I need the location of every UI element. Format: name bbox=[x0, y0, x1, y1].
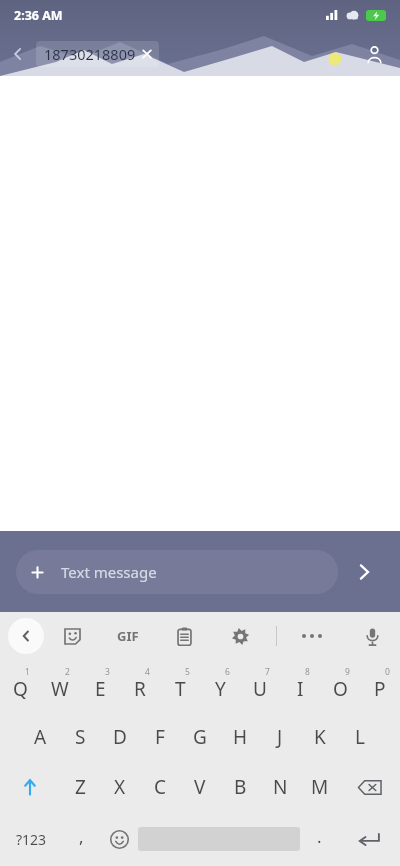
button[interactable]: Stickers bbox=[44, 612, 100, 660]
staticText: Y bbox=[215, 676, 226, 702]
button[interactable]: 0 bbox=[360, 660, 400, 712]
staticText: Text message bbox=[61, 562, 157, 582]
staticText: O bbox=[333, 676, 348, 702]
other: Attach bbox=[30, 565, 45, 580]
button[interactable]: Close toolbar bbox=[8, 618, 44, 654]
staticText: 18730218809 bbox=[44, 44, 136, 64]
staticText: 1 bbox=[25, 666, 30, 678]
button[interactable]: Enter bbox=[338, 812, 400, 866]
button[interactable]: J bbox=[260, 712, 300, 762]
button[interactable]: 8 bbox=[280, 660, 320, 712]
staticText: L bbox=[355, 724, 365, 750]
staticText: 7 bbox=[265, 666, 270, 678]
staticText: N bbox=[273, 774, 288, 800]
staticText: 9 bbox=[345, 666, 350, 678]
staticText: E bbox=[95, 676, 106, 702]
button[interactable]: Backspace bbox=[340, 762, 400, 812]
staticText: U bbox=[253, 676, 267, 702]
button[interactable]: . bbox=[300, 812, 338, 866]
button[interactable]: 2 bbox=[40, 660, 80, 712]
button[interactable]: Z bbox=[60, 762, 100, 812]
staticText: K bbox=[314, 724, 326, 750]
staticText: A bbox=[34, 724, 47, 750]
button[interactable]: Shift bbox=[0, 762, 60, 812]
button[interactable]: Attach bbox=[16, 550, 338, 594]
button[interactable]: 9 bbox=[320, 660, 360, 712]
button[interactable]: Contacts bbox=[354, 34, 394, 74]
button[interactable]: Settings bbox=[212, 612, 268, 660]
button[interactable]: B bbox=[220, 762, 260, 812]
staticText: I bbox=[297, 676, 304, 702]
button[interactable]: K bbox=[300, 712, 340, 762]
staticText: D bbox=[113, 724, 127, 750]
staticText: P bbox=[374, 676, 386, 702]
staticText: 3 bbox=[105, 666, 110, 678]
staticText: Q bbox=[13, 676, 28, 702]
button[interactable]: F bbox=[140, 712, 180, 762]
button[interactable]: Back bbox=[0, 36, 36, 72]
staticText: X bbox=[114, 774, 126, 800]
staticText: M bbox=[311, 774, 329, 800]
button[interactable]: Send bbox=[338, 546, 390, 598]
button[interactable]: Clipboard bbox=[156, 612, 212, 660]
staticText: 2 bbox=[65, 666, 70, 678]
staticText: B bbox=[234, 774, 247, 800]
button[interactable]: D bbox=[100, 712, 140, 762]
button[interactable]: N bbox=[260, 762, 300, 812]
staticText: G bbox=[193, 724, 207, 750]
button[interactable]: GIF bbox=[100, 612, 156, 660]
staticText: H bbox=[233, 724, 248, 750]
staticText: S bbox=[75, 724, 86, 750]
button[interactable]: M bbox=[300, 762, 340, 812]
staticText: ?123 bbox=[16, 830, 47, 849]
button[interactable]: , bbox=[62, 812, 100, 866]
staticText: 5 bbox=[185, 666, 190, 678]
button[interactable]: More options bbox=[284, 612, 340, 660]
staticText: , bbox=[79, 825, 84, 848]
staticText: R bbox=[134, 676, 146, 702]
staticText: C bbox=[154, 774, 167, 800]
button[interactable]: 1 bbox=[0, 660, 40, 712]
staticText: 8 bbox=[305, 666, 310, 678]
staticText: T bbox=[175, 676, 186, 702]
staticText: 2:36 AM bbox=[14, 7, 63, 24]
staticText: 4 bbox=[145, 666, 150, 678]
button[interactable]: 6 bbox=[200, 660, 240, 712]
button[interactable]: 18730218809 bbox=[36, 41, 159, 67]
button[interactable]: 4 bbox=[120, 660, 160, 712]
button[interactable]: A bbox=[20, 712, 60, 762]
staticText: J bbox=[277, 724, 283, 750]
button[interactable]: H bbox=[220, 712, 260, 762]
staticText: 6 bbox=[225, 666, 230, 678]
staticText: Z bbox=[75, 774, 86, 800]
button[interactable]: 3 bbox=[80, 660, 120, 712]
button[interactable]: Space bbox=[138, 812, 300, 866]
button[interactable]: Emoji bbox=[100, 812, 138, 866]
staticText: GIF bbox=[117, 627, 139, 645]
button[interactable]: 5 bbox=[160, 660, 200, 712]
staticText: V bbox=[194, 774, 206, 800]
button[interactable]: ?123 bbox=[0, 812, 62, 866]
button[interactable]: Voice input bbox=[350, 614, 394, 658]
staticText: F bbox=[155, 724, 165, 750]
button[interactable]: G bbox=[180, 712, 220, 762]
button[interactable]: L bbox=[340, 712, 380, 762]
button[interactable]: C bbox=[140, 762, 180, 812]
button[interactable]: S bbox=[60, 712, 100, 762]
button[interactable]: X bbox=[100, 762, 140, 812]
staticText: W bbox=[51, 676, 69, 702]
button[interactable]: V bbox=[180, 762, 220, 812]
staticText: . bbox=[317, 825, 322, 848]
other: Remove recipient bbox=[141, 48, 153, 60]
staticText: 0 bbox=[385, 666, 390, 678]
button[interactable]: 7 bbox=[240, 660, 280, 712]
